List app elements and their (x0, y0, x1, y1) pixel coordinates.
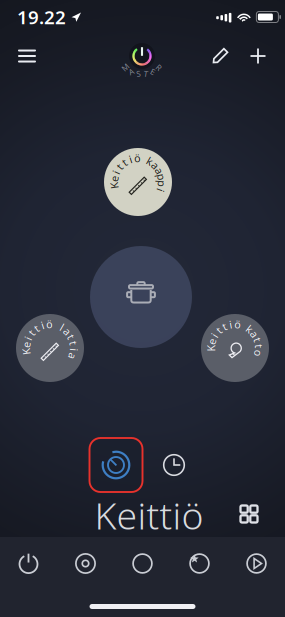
staticText: ö (46, 317, 52, 331)
button[interactable]: K (201, 314, 269, 382)
staticText: t (69, 330, 73, 344)
button[interactable]: Effects (171, 537, 228, 590)
staticText: i (72, 343, 75, 357)
staticText: l (60, 320, 63, 334)
button[interactable]: Add (239, 37, 277, 75)
staticText: a (70, 349, 76, 363)
button[interactable]: Master power (114, 28, 170, 84)
staticText: R (156, 62, 161, 73)
staticText: M (122, 62, 129, 73)
button[interactable]: Play (228, 537, 285, 590)
staticText: T (144, 68, 148, 79)
staticText: t (222, 319, 226, 333)
staticText: K (207, 341, 214, 355)
staticText: a (156, 164, 162, 178)
staticText (242, 319, 245, 333)
staticText: t (30, 325, 34, 340)
staticText: ö (134, 151, 140, 165)
staticText: o (255, 346, 261, 360)
staticText: p (158, 170, 165, 184)
staticText: 19.22 (17, 5, 66, 29)
staticText: e (209, 334, 215, 348)
staticText: a (64, 324, 70, 338)
button[interactable]: Grid view (229, 494, 269, 534)
staticText: p (158, 177, 165, 191)
staticText: K (23, 344, 30, 358)
staticText: i (129, 152, 132, 166)
staticText: ö (234, 317, 240, 331)
staticText: i (115, 165, 118, 179)
button[interactable]: K (104, 148, 172, 216)
staticText: k (247, 322, 253, 336)
button[interactable]: Power (0, 537, 57, 590)
staticText: E (151, 66, 155, 77)
staticText: K (111, 178, 118, 192)
staticText: t (217, 323, 221, 337)
staticText: t (257, 339, 261, 353)
staticText: k (147, 154, 153, 168)
staticText: e (23, 338, 29, 352)
button[interactable]: Edit (201, 37, 239, 75)
staticText: i (229, 317, 232, 331)
staticText: e (111, 172, 117, 186)
staticText: i (41, 318, 44, 332)
staticText: A (129, 66, 134, 77)
staticText: t (123, 155, 127, 169)
staticText: t (35, 321, 39, 335)
staticText: Keittiö (94, 490, 203, 540)
staticText: S (136, 68, 140, 79)
staticText: t (256, 333, 260, 347)
staticText: i (213, 328, 216, 342)
button[interactable]: Schedule (152, 443, 196, 487)
staticText: t (118, 159, 122, 174)
button[interactable]: Scenes (57, 537, 114, 590)
staticText: i (159, 183, 162, 197)
button[interactable]: Timer programs (88, 436, 144, 493)
staticText: a (152, 158, 158, 172)
staticText: t (71, 336, 75, 350)
staticText: a (251, 327, 257, 341)
button[interactable]: Menu (8, 37, 46, 75)
staticText: i (27, 331, 30, 345)
button[interactable]: Rooms (114, 537, 171, 590)
button[interactable]: K (16, 314, 84, 382)
